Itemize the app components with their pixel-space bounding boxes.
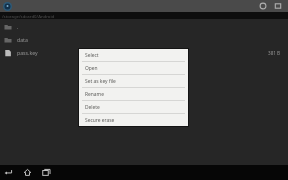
staticText: pass.key: [17, 49, 268, 56]
button[interactable]: Delete: [79, 101, 188, 113]
button[interactable]: Refresh: [258, 1, 268, 11]
button[interactable]: /storage/sdcard0/Android: [0, 12, 288, 19]
staticText: 381 B: [268, 50, 281, 56]
button[interactable]: .: [0, 20, 288, 33]
button[interactable]: Set as key file: [79, 75, 188, 87]
button[interactable]: More options: [273, 1, 283, 11]
button[interactable]: Navigate up: [2, 1, 12, 11]
staticText: Open: [85, 65, 98, 72]
button[interactable]: Home: [22, 167, 33, 178]
staticText: Select: [85, 52, 99, 59]
button[interactable]: Secure erase: [79, 114, 188, 126]
button[interactable]: Rename: [79, 88, 188, 100]
button[interactable]: Recents: [41, 167, 52, 178]
staticText: Rename: [85, 91, 104, 98]
button[interactable]: Back: [3, 167, 14, 178]
button[interactable]: Open: [79, 62, 188, 74]
button[interactable]: data: [0, 33, 288, 46]
staticText: data: [17, 36, 281, 43]
button[interactable]: Select: [79, 49, 188, 61]
button[interactable]: pass.key: [0, 46, 288, 59]
staticText: Secure erase: [85, 117, 115, 124]
staticText: Set as key file: [85, 78, 116, 85]
staticText: /storage/sdcard0/Android: [2, 13, 55, 19]
staticText: Delete: [85, 104, 100, 111]
